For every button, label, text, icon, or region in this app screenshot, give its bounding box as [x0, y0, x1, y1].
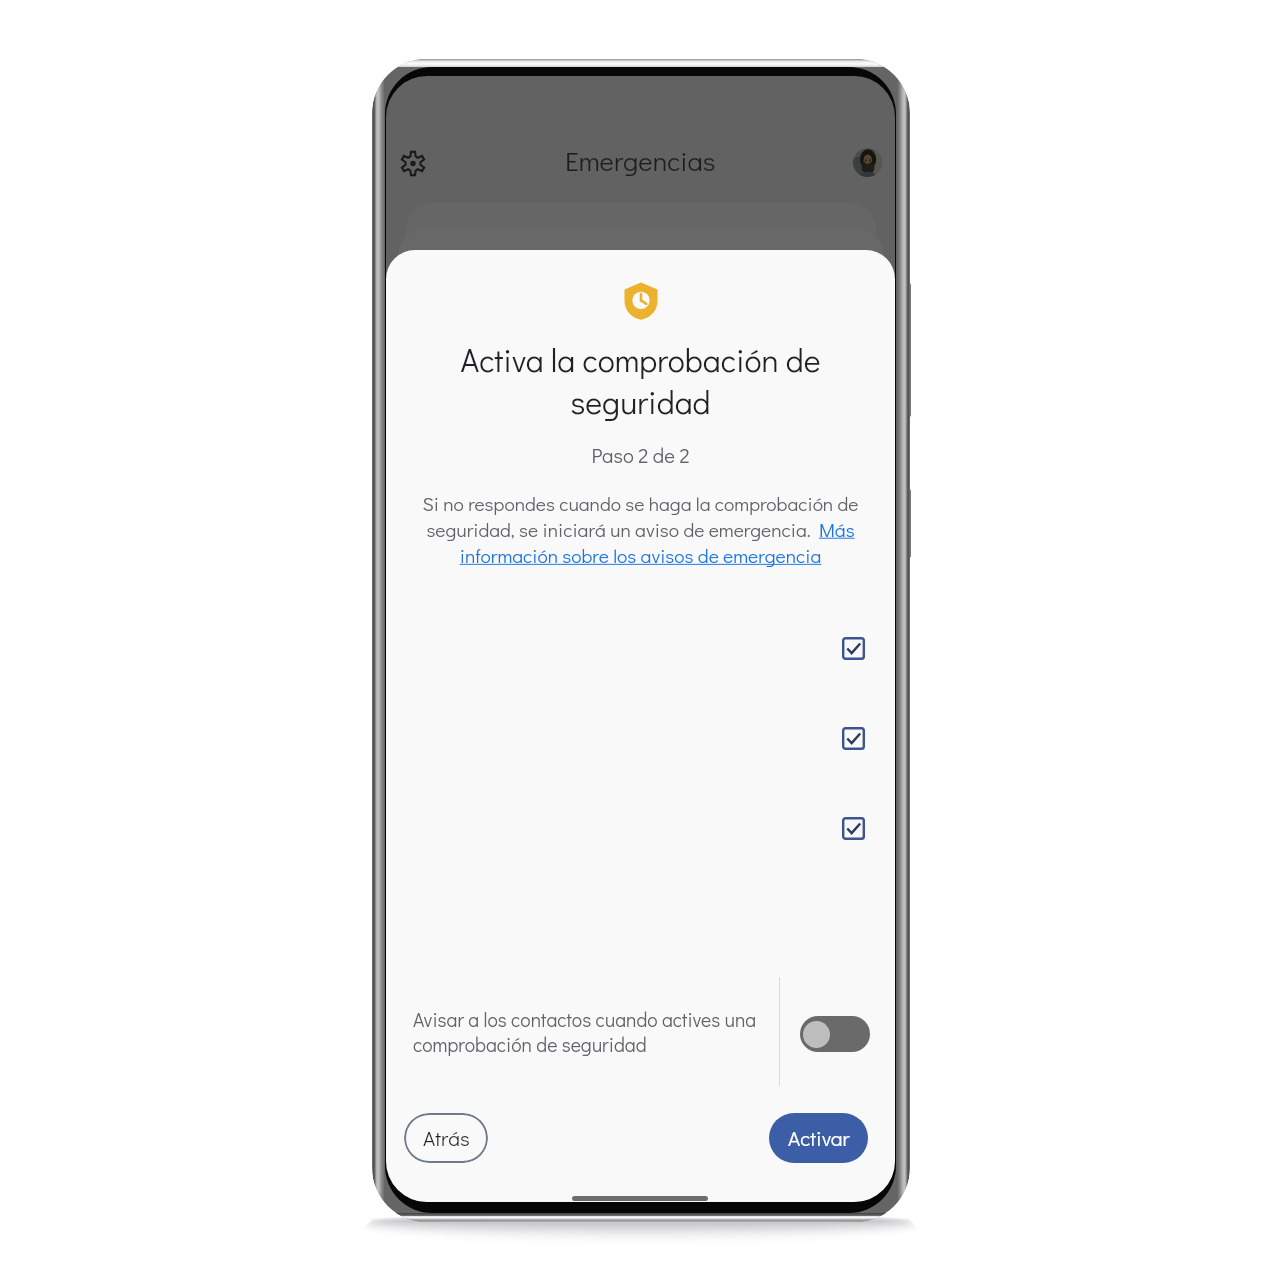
button[interactable]	[406, 709, 876, 767]
button[interactable]: Más información sobre los avisos de emer…	[817, 520, 859, 544]
button[interactable]: Settings	[393, 143, 433, 183]
staticText: Emergencias	[565, 143, 716, 179]
staticText: Si no respondes cuando se haga la compro…	[419, 491, 862, 568]
button[interactable]: Notify contacts	[800, 1016, 870, 1052]
button[interactable]: Más información sobre los avisos de emer…	[460, 546, 822, 570]
button[interactable]: Atrás	[404, 1113, 488, 1163]
button[interactable]	[406, 799, 876, 857]
staticText: Avisar a los contactos cuando actives un…	[413, 1007, 763, 1057]
staticText: Paso 2 de 2	[386, 442, 895, 469]
staticText: Activar	[788, 1124, 850, 1152]
staticText: Activa la comprobación de seguridad	[406, 339, 875, 422]
button[interactable]: Activar	[769, 1113, 868, 1163]
button[interactable]: Avisar a los contactos cuando actives un…	[406, 977, 876, 1086]
staticText: Atrás	[423, 1124, 470, 1152]
button[interactable]	[406, 619, 876, 677]
button[interactable]: Account	[853, 148, 882, 177]
